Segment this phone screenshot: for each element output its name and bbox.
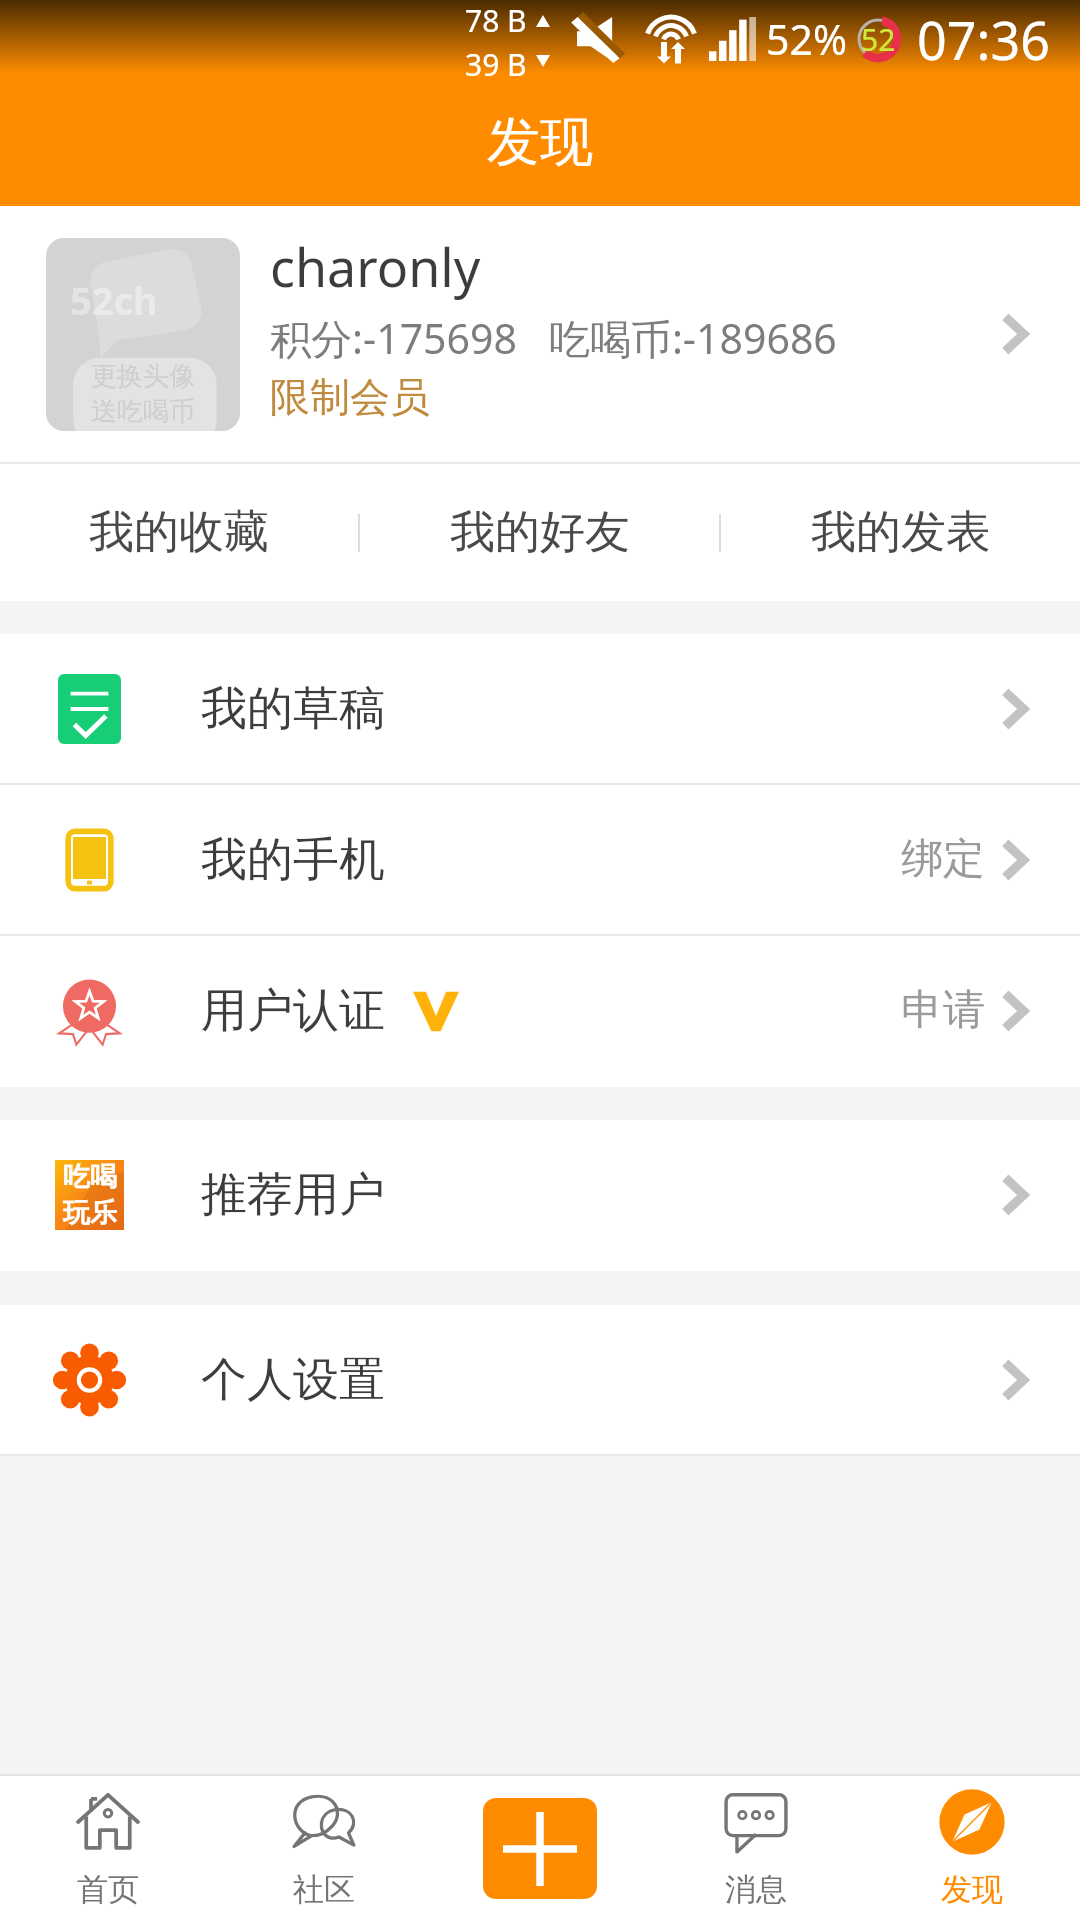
staticText: 消息	[725, 1870, 787, 1909]
staticText: 52%	[766, 11, 847, 67]
button[interactable]: 我的好友	[360, 464, 719, 601]
staticText: 社区	[293, 1870, 355, 1909]
staticText: 我的草稿	[201, 680, 385, 738]
button[interactable]: 社区	[216, 1776, 432, 1920]
staticText: 绑定	[901, 833, 985, 886]
button[interactable]: 发现	[864, 1776, 1080, 1920]
staticText: 推荐用户	[201, 1166, 385, 1224]
staticText: 更换头像	[91, 360, 195, 393]
button[interactable]: 吃喝	[0, 1120, 1080, 1269]
staticText: 我的好友	[450, 504, 630, 561]
staticText: 个人设置	[201, 1351, 385, 1409]
button[interactable]: 用户认证	[0, 936, 1080, 1085]
button[interactable]: 消息	[648, 1776, 864, 1920]
staticText: 送吃喝币	[91, 395, 195, 428]
staticText: 07:36	[917, 4, 1050, 75]
staticText: 首页	[77, 1870, 139, 1909]
staticText: 我的收藏	[89, 504, 269, 561]
button[interactable]: 52ch	[0, 206, 1080, 462]
staticText: 我的手机	[201, 831, 385, 889]
button[interactable]: 个人设置	[0, 1305, 1080, 1454]
staticText: 玩乐	[63, 1196, 117, 1230]
staticText: 发现	[487, 109, 593, 176]
button[interactable]: 我的手机	[0, 785, 1080, 934]
staticText: 52ch	[70, 274, 158, 326]
staticText: 吃喝	[63, 1160, 117, 1194]
staticText: 用户认证	[201, 982, 385, 1040]
button[interactable]: 发布	[483, 1798, 597, 1899]
button[interactable]: 我的发表	[721, 464, 1080, 601]
staticText: 我的发表	[811, 504, 991, 561]
staticText: 78 B	[465, 0, 527, 41]
button[interactable]: 我的收藏	[0, 464, 358, 601]
staticText: 发现	[941, 1870, 1003, 1909]
button[interactable]: 首页	[0, 1776, 216, 1920]
staticText: 申请	[901, 984, 985, 1037]
staticText: 39 B	[465, 44, 527, 78]
staticText: 52	[861, 19, 896, 60]
staticText: 积分:-175698 吃喝币:-189686	[270, 310, 837, 366]
staticText: 限制会员	[270, 372, 430, 422]
button[interactable]: 我的草稿	[0, 634, 1080, 783]
staticText: charonly	[270, 231, 481, 302]
